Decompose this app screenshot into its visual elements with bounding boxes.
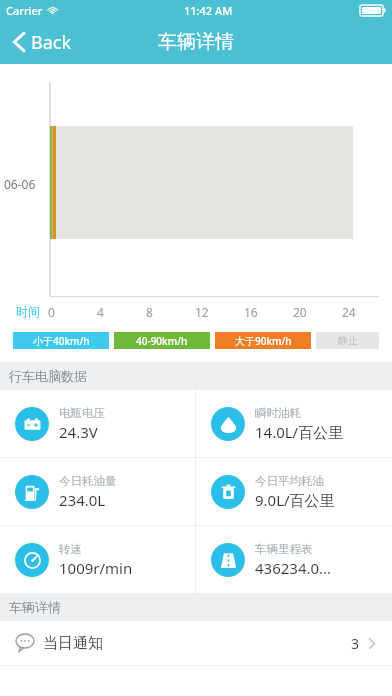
staticText: Carrier — [6, 3, 43, 18]
staticText: 转速 — [59, 542, 82, 556]
button[interactable]: 小于40km/h — [13, 332, 109, 349]
staticText: 11:42 AM — [184, 3, 233, 18]
staticText: 16 — [244, 304, 258, 320]
staticText: 14.0L/百公里 — [255, 422, 344, 442]
staticText: 1009r/min — [59, 558, 133, 578]
button[interactable]: 今日耗油量 — [0, 458, 195, 525]
staticText: 时间 — [16, 304, 40, 319]
staticText: 当日通知 — [43, 634, 103, 653]
staticText: 8 — [146, 304, 153, 320]
staticText: 24.3V — [59, 422, 98, 442]
button[interactable]: 瞬时油耗 — [196, 390, 392, 457]
staticText: 行车电脑数据 — [9, 368, 87, 384]
staticText: 06-06 — [4, 176, 36, 192]
button[interactable]: 当日通知 — [0, 621, 392, 665]
staticText: 今日平均耗油 — [255, 474, 324, 488]
button[interactable]: Back — [0, 20, 84, 64]
staticText: 3 — [351, 634, 360, 653]
staticText: 静止 — [338, 334, 358, 347]
staticText: 车辆详情 — [158, 30, 234, 54]
staticText: 436234.0... — [255, 558, 332, 578]
staticText: 234.0L — [59, 490, 106, 510]
button[interactable]: 大于90km/h — [215, 332, 311, 349]
button[interactable]: 40-90km/h — [114, 332, 210, 349]
button[interactable]: 今日平均耗油 — [196, 458, 392, 525]
staticText: 0 — [48, 304, 55, 320]
button[interactable]: 转速 — [0, 526, 195, 593]
button[interactable]: 车辆里程表 — [196, 526, 392, 593]
button[interactable]: 静止 — [316, 332, 379, 349]
staticText: 瞬时油耗 — [255, 406, 301, 420]
staticText: 大于90km/h — [235, 334, 292, 348]
staticText: 9.0L/百公里 — [255, 490, 335, 510]
staticText: 车辆里程表 — [255, 542, 313, 556]
staticText: 24 — [342, 304, 356, 320]
staticText: 车辆详情 — [9, 599, 61, 615]
staticText: 今日耗油量 — [59, 474, 117, 488]
staticText: 12 — [195, 304, 209, 320]
staticText: 小于40km/h — [33, 334, 90, 348]
staticText: 电瓶电压 — [59, 406, 105, 420]
staticText: 20 — [293, 304, 307, 320]
staticText: 4 — [97, 304, 104, 320]
staticText: 40-90km/h — [136, 334, 188, 348]
staticText: Back — [31, 30, 72, 55]
button[interactable]: 电瓶电压 — [0, 390, 195, 457]
